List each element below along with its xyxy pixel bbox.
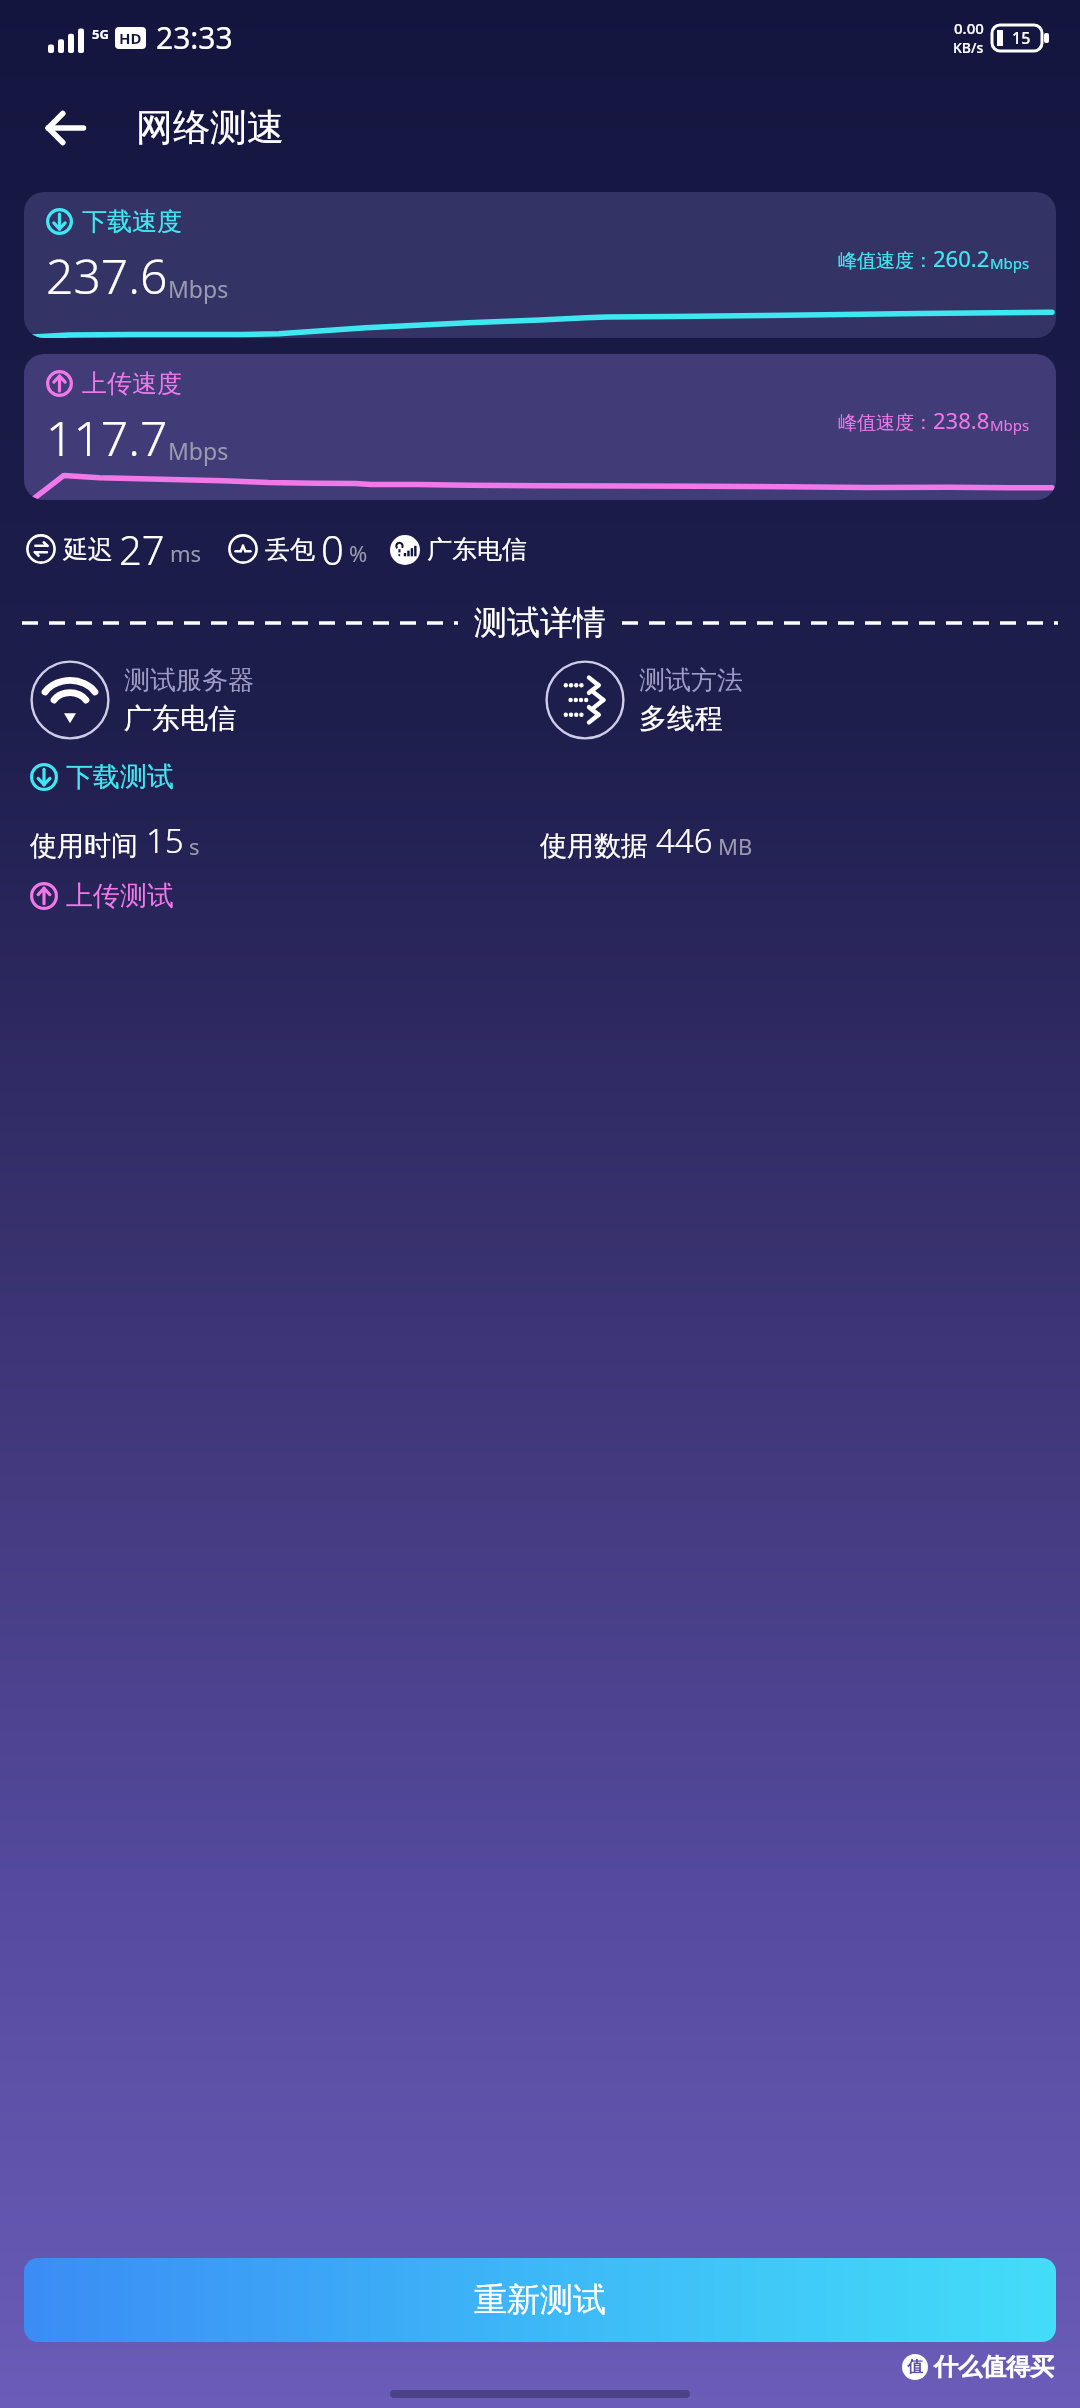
staticText: Mbps bbox=[990, 415, 1030, 435]
button[interactable]: 重新测试 bbox=[24, 2258, 1056, 2342]
staticText: Mbps bbox=[168, 435, 229, 466]
staticText: Mbps bbox=[990, 253, 1030, 273]
staticText: 测试详情 bbox=[474, 602, 606, 644]
staticText: 使用数据 bbox=[540, 829, 648, 863]
staticText: 测试服务器 bbox=[124, 664, 254, 697]
staticText: 下载速度 bbox=[82, 206, 182, 237]
staticText: ms bbox=[170, 538, 202, 568]
staticText: 多线程 bbox=[639, 701, 723, 736]
staticText: 260.2 bbox=[933, 243, 990, 273]
staticText: 15 bbox=[1012, 27, 1031, 49]
button[interactable]: 下载测试 bbox=[30, 760, 174, 794]
staticText: 值 bbox=[907, 2357, 923, 2377]
staticText: 上传测试 bbox=[66, 879, 174, 913]
staticText: 延迟 bbox=[63, 534, 113, 565]
staticText: HD bbox=[119, 28, 142, 48]
staticText: 什么值得买 bbox=[934, 2352, 1054, 2382]
staticText: 广东电信 bbox=[124, 701, 236, 736]
staticText: 238.8 bbox=[933, 405, 990, 435]
staticText: 上传速度 bbox=[82, 368, 182, 399]
button[interactable]: 测试方法 bbox=[545, 660, 1050, 740]
button[interactable]: 广东电信 bbox=[390, 534, 527, 565]
button[interactable]: 上传测试 bbox=[30, 879, 1050, 913]
button[interactable]: Back bbox=[34, 97, 96, 159]
staticText: 网络测速 bbox=[136, 104, 284, 151]
staticText: 5G bbox=[92, 25, 109, 43]
staticText: MB bbox=[718, 831, 753, 861]
staticText: % bbox=[349, 538, 368, 568]
staticText: 广东电信 bbox=[427, 534, 527, 565]
button[interactable]: 延迟 bbox=[26, 522, 202, 576]
staticText: 测试方法 bbox=[639, 664, 743, 697]
button[interactable]: 丢包 bbox=[228, 522, 368, 576]
staticText: s bbox=[189, 831, 200, 861]
staticText: 0 bbox=[321, 522, 344, 576]
staticText: 重新测试 bbox=[474, 2279, 606, 2321]
staticText: 使用时间 bbox=[30, 829, 138, 863]
staticText: 0.00 bbox=[954, 18, 984, 38]
staticText: KB/s bbox=[953, 38, 984, 57]
staticText: 117.7 bbox=[46, 405, 168, 470]
staticText: 27 bbox=[119, 522, 165, 576]
button[interactable]: 测试服务器 bbox=[30, 660, 535, 740]
staticText: 丢包 bbox=[265, 534, 315, 565]
button[interactable]: 下载速度 bbox=[24, 192, 1056, 338]
staticText: 下载测试 bbox=[66, 760, 174, 794]
button[interactable]: 上传速度 bbox=[24, 354, 1056, 500]
staticText: 15 bbox=[146, 818, 184, 863]
staticText: 峰值速度： bbox=[838, 411, 933, 435]
staticText: Mbps bbox=[168, 273, 229, 304]
staticText: 峰值速度： bbox=[838, 249, 933, 273]
staticText: 237.6 bbox=[46, 243, 168, 308]
staticText: 23:33 bbox=[156, 17, 233, 58]
staticText: 446 bbox=[656, 818, 713, 863]
